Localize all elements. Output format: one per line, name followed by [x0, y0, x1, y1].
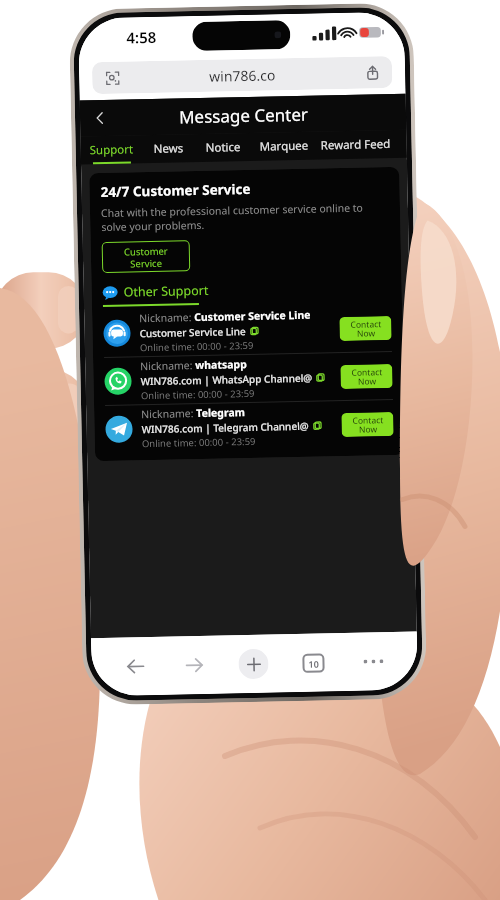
button[interactable]: Back [105, 644, 165, 689]
staticText: Online time: 00:00 - 23:59 [140, 339, 254, 354]
button[interactable]: Marquee [250, 131, 317, 161]
staticText: Customer Service Line [194, 308, 311, 324]
staticText: Notice [205, 139, 241, 156]
button[interactable]: Reward Feed [316, 130, 395, 159]
button[interactable]: Customer Service [102, 240, 190, 273]
button[interactable]: More [343, 639, 404, 684]
button[interactable]: Notice [194, 133, 251, 162]
staticText: Other Support [123, 282, 209, 301]
staticText: Support [89, 141, 134, 158]
staticText: Nickname: [140, 358, 195, 373]
staticText: 24/7 Customer Service [100, 180, 251, 201]
staticText: 10 [308, 658, 320, 670]
staticText: Customer Service [124, 245, 168, 270]
staticText: Reward Feed [320, 136, 391, 153]
button[interactable]: Nickname: [93, 352, 404, 405]
button[interactable]: Page settings [92, 56, 392, 94]
staticText: Nickname: [139, 310, 194, 325]
button[interactable]: Contact Now [339, 316, 392, 341]
button[interactable]: News [142, 134, 195, 163]
button[interactable]: Support [80, 135, 143, 164]
staticText: Contact Now [351, 366, 383, 388]
staticText: win786.co [209, 65, 276, 86]
button[interactable]: Tabs [283, 640, 344, 685]
staticText: Contact Now [350, 318, 382, 340]
staticText: Contact Now [352, 414, 384, 436]
button[interactable]: New tab [223, 641, 284, 686]
staticText: Marquee [259, 138, 309, 155]
staticText: Message Center [179, 103, 308, 128]
staticText: WIN786.com | WhatsApp Channel@ [140, 371, 313, 388]
staticText: whatsapp [195, 357, 247, 372]
staticText: Customer Service Line [139, 324, 247, 340]
staticText: Online time: 00:00 - 23:59 [141, 387, 255, 402]
button[interactable]: Contact Now [341, 412, 394, 437]
button[interactable]: Forward [164, 643, 224, 688]
staticText: News [153, 140, 184, 157]
staticText: Telegram [196, 405, 245, 420]
staticText: Online time: 00:00 - 23:59 [142, 435, 256, 450]
staticText: WIN786.com | Telegram Channel@ [141, 419, 310, 436]
staticText: Nickname: [141, 406, 196, 421]
staticText: Chat with the professional customer serv… [101, 200, 389, 234]
other: Page settings [92, 61, 133, 94]
button[interactable]: Back [80, 100, 120, 136]
button[interactable]: Nickname: [92, 304, 403, 357]
staticText: 4:58 [126, 27, 156, 47]
button[interactable]: Contact Now [340, 364, 393, 389]
other: Share [352, 56, 392, 89]
button[interactable]: Nickname: [94, 400, 405, 453]
button[interactable]: Other Support [102, 282, 209, 301]
